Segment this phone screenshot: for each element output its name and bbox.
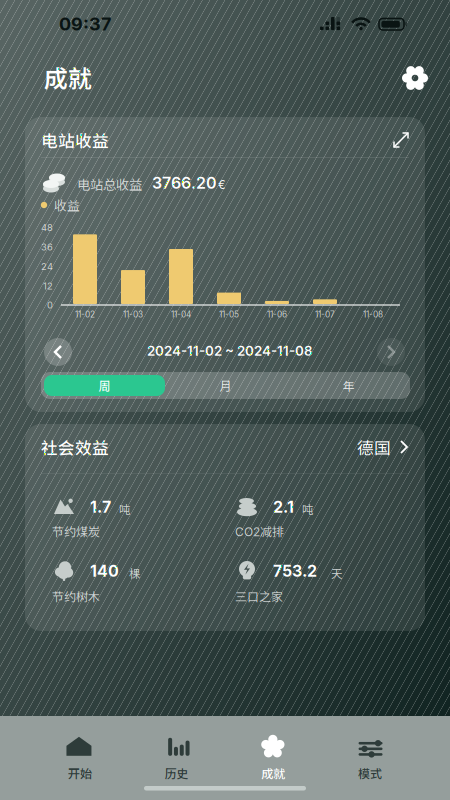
staticText: 节约煤炭 — [52, 522, 100, 540]
staticText: 月 — [219, 377, 231, 394]
staticText: 2024-11-02 ~ 2024-11-08 — [147, 343, 313, 359]
button[interactable]: 开始 — [32, 728, 128, 788]
staticText: 历史 — [165, 764, 189, 782]
staticText: 48 — [41, 222, 53, 233]
staticText: 德国 — [357, 435, 391, 459]
staticText: 吨 — [119, 501, 130, 517]
staticText: 社会效益 — [41, 435, 109, 459]
staticText: 收益 — [54, 196, 80, 214]
staticText: 天 — [331, 565, 342, 581]
staticText: 成就 — [44, 60, 92, 94]
staticText: 0 — [47, 299, 53, 311]
staticText: € — [218, 178, 226, 192]
staticText: 11-08 — [363, 309, 383, 319]
staticText: 3766.20 — [152, 173, 217, 193]
button[interactable]: Expand chart — [384, 123, 418, 157]
staticText: 三口之家 — [235, 587, 283, 605]
staticText: 电站收益 — [41, 128, 109, 152]
staticText: 开始 — [68, 764, 92, 782]
staticText: CO2减排 — [235, 522, 284, 540]
button[interactable]: 历史 — [128, 728, 225, 788]
staticText: 11-07 — [315, 309, 335, 319]
staticText: 140 — [90, 561, 119, 581]
staticText: 周 — [98, 377, 110, 394]
staticText: 电站总收益 — [77, 174, 142, 194]
staticText: 1.7 — [90, 497, 111, 517]
button[interactable]: 周 — [0, 0, 450, 800]
staticText: 成就 — [261, 764, 285, 782]
staticText: 24 — [41, 261, 53, 272]
staticText: 棵 — [129, 565, 140, 581]
staticText: 11-05 — [219, 309, 239, 319]
staticText: 2.1 — [273, 497, 294, 517]
button[interactable]: Settings — [393, 56, 437, 100]
staticText: 年 — [342, 377, 354, 394]
staticText: 11-06 — [267, 309, 287, 319]
button[interactable]: Previous week — [41, 335, 75, 369]
staticText: 36 — [41, 241, 53, 253]
button[interactable]: 德国 — [0, 0, 450, 800]
button[interactable]: 年 — [0, 0, 450, 800]
staticText: 11-02 — [75, 309, 95, 319]
staticText: 09:37 — [59, 13, 111, 35]
button[interactable]: Next week — [374, 335, 408, 369]
staticText: 11-03 — [123, 309, 143, 319]
button[interactable]: 模式 — [322, 728, 418, 788]
staticText: 节约树木 — [52, 587, 100, 605]
staticText: 11-04 — [171, 309, 191, 319]
button[interactable]: 成就 — [225, 728, 322, 788]
staticText: 12 — [43, 280, 53, 292]
staticText: 吨 — [302, 501, 313, 517]
staticText: 模式 — [358, 764, 382, 782]
staticText: 753.2 — [273, 561, 317, 581]
button[interactable]: 月 — [0, 0, 450, 800]
